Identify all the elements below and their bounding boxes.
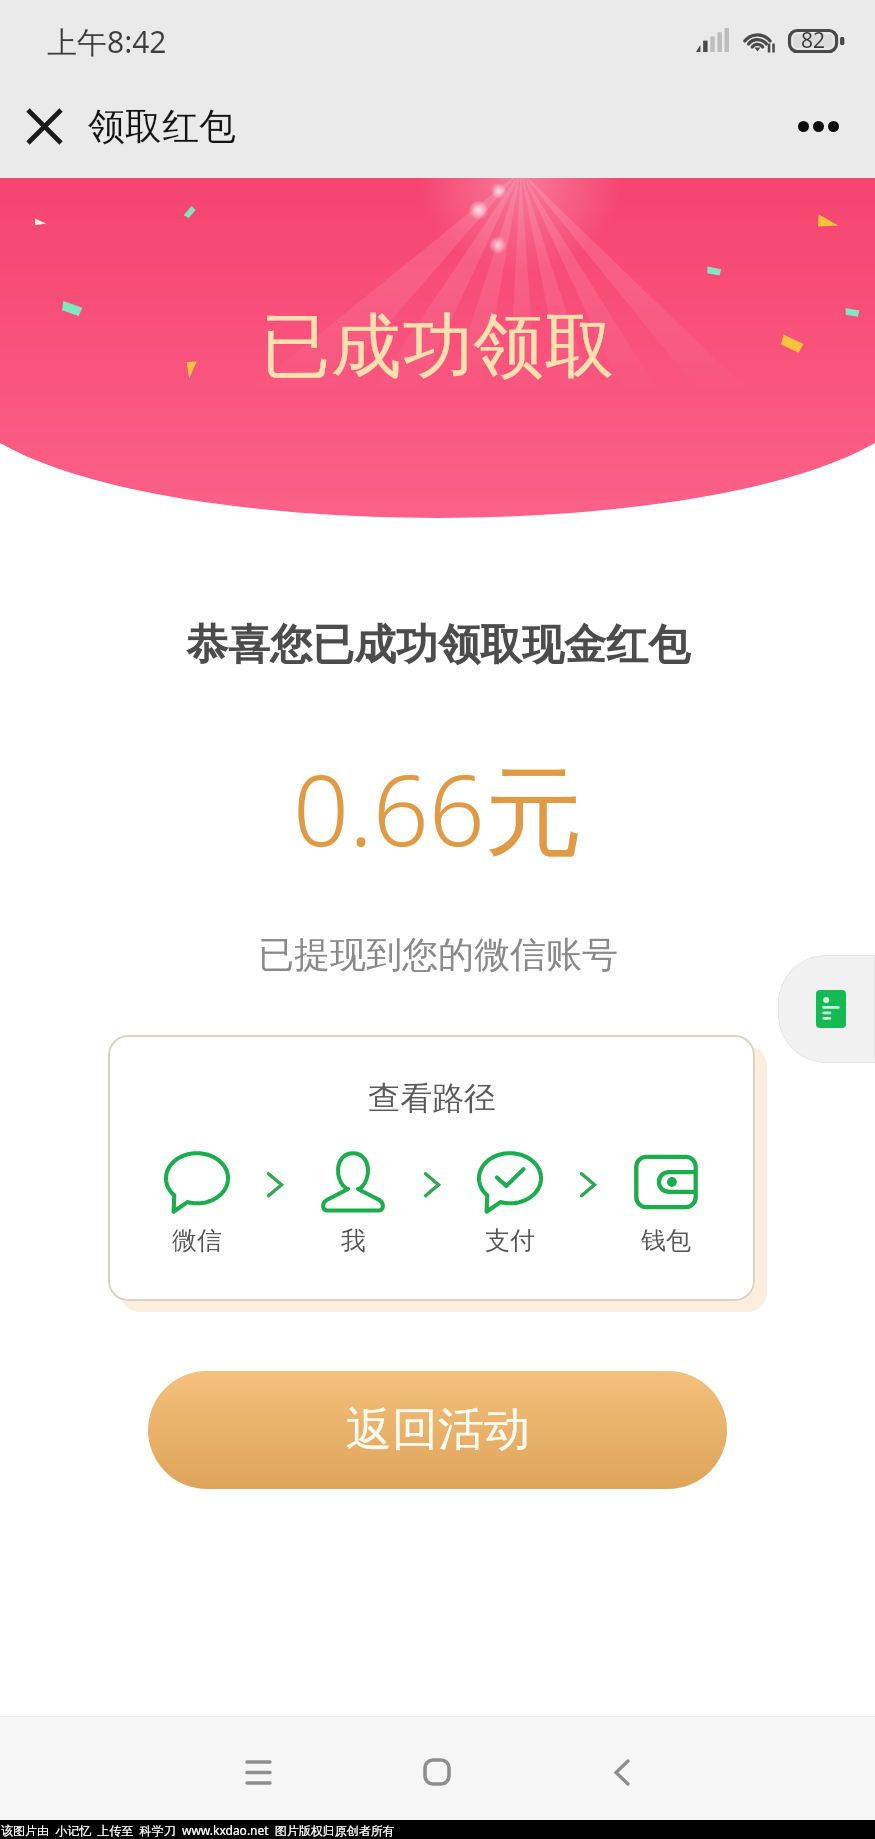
staticText: 82 [801, 26, 826, 55]
staticText: 支付 [485, 1225, 535, 1256]
button[interactable]: Back [562, 1722, 682, 1822]
button[interactable]: More options [778, 86, 858, 166]
staticText: 领取红包 [88, 103, 236, 150]
staticText: 我 [341, 1225, 366, 1256]
staticText: 已成功领取 [260, 303, 615, 391]
staticText: 恭喜您已成功领取现金红包 [186, 619, 690, 672]
button[interactable]: Details [778, 955, 875, 1063]
staticText: 返回活动 [346, 1401, 530, 1459]
button[interactable]: 查看路径 [108, 1035, 755, 1301]
staticText: 微信 [172, 1225, 222, 1256]
button[interactable]: 返回活动 [148, 1371, 727, 1489]
staticText: 已提现到您的微信账号 [258, 932, 618, 977]
staticText: 该图片由 小记忆 上传至 科学刀 www.kxdao.net 图片版权归原创者所… [1, 1822, 395, 1838]
button[interactable]: Recent apps [198, 1722, 318, 1822]
button[interactable]: Home [377, 1722, 497, 1822]
staticText: 查看路径 [368, 1078, 496, 1118]
staticText: 钱包 [641, 1225, 691, 1256]
staticText: 0.66元 [293, 741, 583, 875]
staticText: 上午8:42 [47, 21, 167, 62]
button[interactable]: Close [0, 82, 88, 170]
